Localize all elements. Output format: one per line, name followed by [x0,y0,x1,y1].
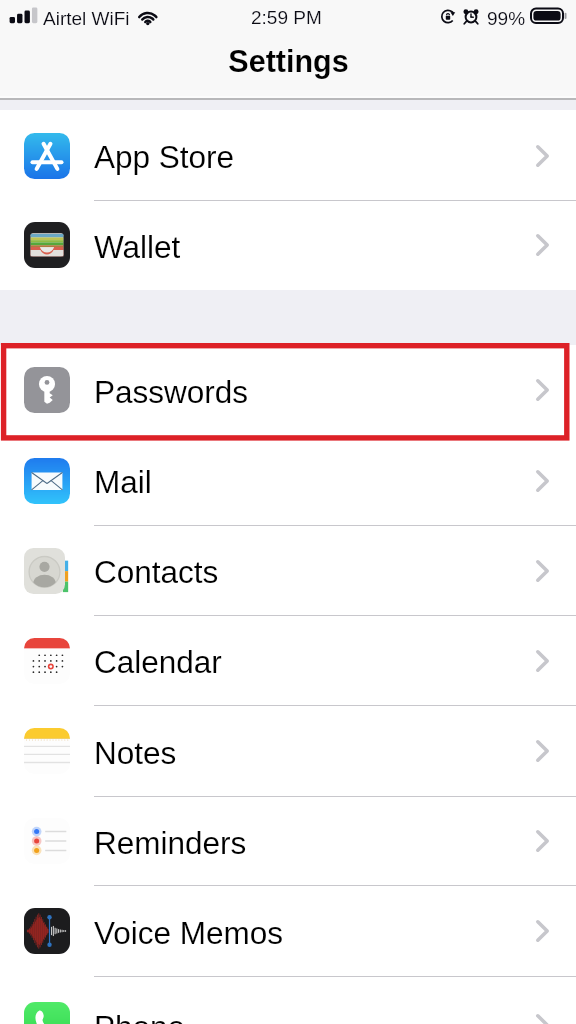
button[interactable]: Reminders [0,796,576,886]
button[interactable]: Passwords [0,345,576,435]
staticText: Airtel WiFi [43,8,130,29]
button[interactable]: Voice Memos [0,885,576,977]
staticText: Reminders [94,825,247,860]
button[interactable]: Wallet [0,200,576,290]
staticText: Contacts [94,554,219,589]
staticText: Wallet [94,229,181,264]
staticText: Notes [94,735,177,770]
button[interactable]: Notes [0,705,576,797]
button[interactable]: App Store [0,110,576,201]
staticText: Voice Memos [94,915,284,950]
staticText: Phone [94,1009,186,1024]
button[interactable]: Calendar [0,615,576,706]
staticText: Passwords [94,374,249,409]
button[interactable]: Contacts [0,525,576,616]
staticText: App Store [94,139,235,174]
button[interactable]: Mail [0,435,576,526]
staticText: 99% [487,8,526,29]
staticText: 2:59 PM [251,7,322,28]
button[interactable]: Phone [0,980,576,1024]
staticText: Calendar [94,644,222,679]
staticText: Mail [94,464,152,499]
staticText: Settings [228,44,349,78]
